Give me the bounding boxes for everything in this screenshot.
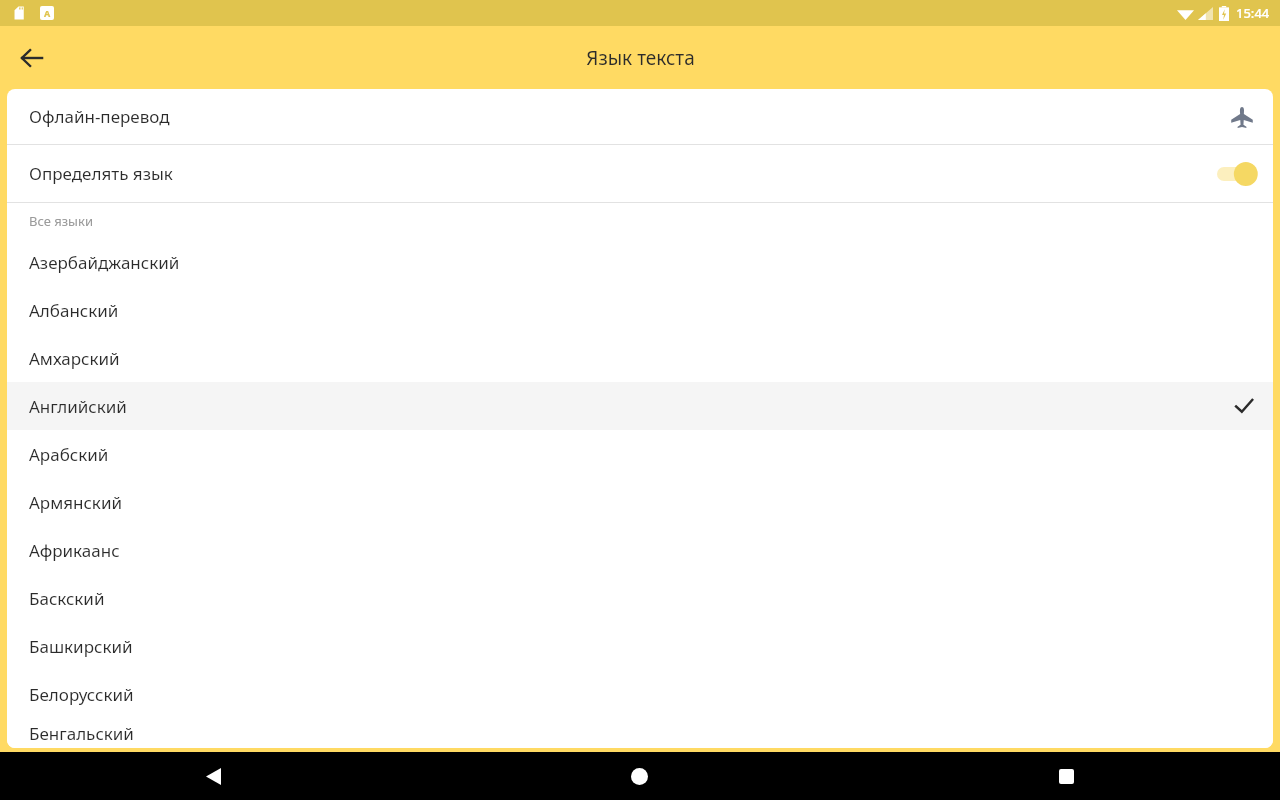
- button[interactable]: Определять язык: [7, 145, 1273, 202]
- button[interactable]: Бенгальский: [7, 718, 1273, 748]
- staticText: Язык текста: [586, 45, 695, 71]
- staticText: Албанский: [29, 299, 119, 322]
- staticText: Амхарский: [29, 347, 120, 370]
- button[interactable]: Home: [426, 752, 853, 800]
- button[interactable]: Амхарский: [7, 334, 1273, 382]
- staticText: Белорусский: [29, 683, 134, 706]
- button[interactable]: Английский: [7, 382, 1273, 430]
- button[interactable]: Албанский: [7, 286, 1273, 334]
- button[interactable]: Армянский: [7, 478, 1273, 526]
- staticText: Африкаанс: [29, 539, 120, 562]
- staticText: Армянский: [29, 491, 123, 514]
- staticText: A: [44, 7, 51, 19]
- staticText: Баскский: [29, 587, 105, 610]
- button[interactable]: Back: [0, 752, 426, 800]
- staticText: Английский: [29, 395, 127, 418]
- staticText: Арабский: [29, 443, 109, 466]
- staticText: Все языки: [29, 212, 93, 230]
- button[interactable]: Азербайджанский: [7, 238, 1273, 286]
- staticText: Азербайджанский: [29, 251, 180, 274]
- button[interactable]: Арабский: [7, 430, 1273, 478]
- staticText: Офлайн-перевод: [29, 105, 170, 128]
- button[interactable]: Баскский: [7, 574, 1273, 622]
- button[interactable]: Офлайн-перевод: [7, 89, 1273, 144]
- staticText: Бенгальский: [29, 722, 134, 745]
- staticText: Определять язык: [29, 162, 173, 185]
- button[interactable]: Recent apps: [853, 752, 1280, 800]
- button[interactable]: Back: [8, 34, 56, 82]
- staticText: 15:44: [1236, 4, 1270, 22]
- button[interactable]: Африкаанс: [7, 526, 1273, 574]
- button[interactable]: Башкирский: [7, 622, 1273, 670]
- staticText: Башкирский: [29, 635, 133, 658]
- button[interactable]: Белорусский: [7, 670, 1273, 718]
